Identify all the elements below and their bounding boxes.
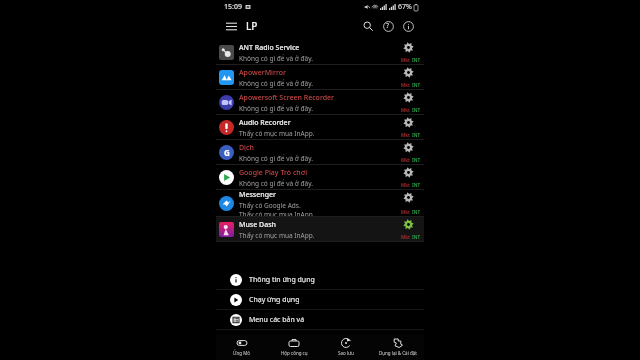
button[interactable]: Settings xyxy=(403,42,414,53)
button[interactable]: Settings xyxy=(403,142,414,153)
button[interactable]: Menu xyxy=(222,17,240,35)
button[interactable]: Audio Recorder xyxy=(216,115,424,140)
button[interactable]: Help xyxy=(378,16,398,36)
staticText: Không có gì để và ở đây. xyxy=(239,54,313,63)
staticText: INT xyxy=(412,157,421,163)
button[interactable]: Dụng lại & Cài đặt xyxy=(372,334,424,360)
staticText: Mkt xyxy=(401,234,410,240)
staticText: Mkt xyxy=(401,182,410,188)
button[interactable]: Google Play Trò chơi xyxy=(216,165,424,190)
staticText: Menu các bản vá xyxy=(249,315,305,325)
button[interactable]: Settings xyxy=(403,92,414,103)
staticText: ANT Radio Service xyxy=(239,43,300,53)
staticText: INT xyxy=(412,82,421,88)
staticText: Không có gì để và ở đây. xyxy=(239,79,313,88)
staticText: Mkt xyxy=(401,209,410,215)
staticText: Hộp công cụ xyxy=(281,350,308,356)
staticText: Audio Recorder xyxy=(239,118,291,128)
staticText: Mkt xyxy=(401,107,410,113)
staticText: Không có gì để và ở đây. xyxy=(239,154,313,163)
staticText: Chạy ứng dụng xyxy=(249,295,300,305)
staticText: Xóa ứng dụng xyxy=(249,355,296,360)
staticText: Dụng lại & Cài đặt xyxy=(379,350,417,356)
staticText: Mkt xyxy=(401,82,410,88)
staticText: 67% xyxy=(398,2,412,12)
staticText: LP xyxy=(246,19,258,33)
staticText: INT xyxy=(412,107,421,113)
staticText: ApowerMirror xyxy=(239,68,287,78)
staticText: Muse Dash xyxy=(239,220,276,230)
staticText: Mkt xyxy=(401,57,410,63)
staticText: Dịch xyxy=(239,143,254,153)
button[interactable]: Messenger xyxy=(216,190,424,217)
button[interactable]: Hộp công cụ xyxy=(268,334,320,360)
staticText: Messenger xyxy=(239,190,276,200)
staticText: Ứng Mô xyxy=(233,350,251,356)
staticText: Không có gì để và ở đây. xyxy=(239,179,313,188)
staticText: INT xyxy=(412,132,421,138)
button[interactable]: Thông tin ứng dụng xyxy=(216,270,424,290)
button[interactable]: Info xyxy=(398,16,418,36)
button[interactable]: Settings xyxy=(403,117,414,128)
button[interactable]: Settings xyxy=(403,67,414,78)
staticText: Thấy có Google Ads. xyxy=(239,201,301,210)
button[interactable]: ANT Radio Service xyxy=(216,40,424,65)
button[interactable]: Muse Dash xyxy=(216,217,424,242)
staticText: 15:09 xyxy=(224,2,242,12)
button[interactable]: Apowersoft Screen Recorder xyxy=(216,90,424,115)
button[interactable]: ApowerMirror xyxy=(216,65,424,90)
staticText: Apowersoft Screen Recorder xyxy=(239,93,335,103)
staticText: Thấy có mục mua InApp. xyxy=(239,231,315,240)
staticText: Thấy có mục mua InApp. xyxy=(239,129,315,138)
staticText: G xyxy=(224,147,230,158)
button[interactable]: Công cụ xyxy=(216,330,424,350)
staticText: Google Play Trò chơi xyxy=(239,168,308,178)
staticText: Thấy có mục mua InApp. xyxy=(239,210,315,217)
button[interactable]: Search xyxy=(358,16,378,36)
button[interactable]: Sao lưu xyxy=(320,334,372,360)
button[interactable]: G xyxy=(216,140,424,165)
staticText: INT xyxy=(412,209,421,215)
staticText: Mkt xyxy=(401,157,410,163)
button[interactable]: Ứng Mô xyxy=(216,334,268,360)
staticText: Không có gì để và ở đây. xyxy=(239,104,313,113)
button[interactable]: Settings xyxy=(403,192,414,203)
staticText: INT xyxy=(412,234,421,240)
button[interactable]: Menu các bản vá xyxy=(216,310,424,330)
button[interactable]: Settings xyxy=(403,167,414,178)
staticText: Thông tin ứng dụng xyxy=(249,275,315,285)
button[interactable]: Xóa ứng dụng xyxy=(216,350,424,360)
button[interactable]: Settings xyxy=(403,219,414,230)
staticText: INT xyxy=(412,182,421,188)
button[interactable]: Chạy ứng dụng xyxy=(216,290,424,310)
staticText: Sao lưu xyxy=(338,350,354,356)
staticText: INT xyxy=(412,57,421,63)
staticText: Mkt xyxy=(401,132,410,138)
staticText: ? xyxy=(386,21,390,31)
